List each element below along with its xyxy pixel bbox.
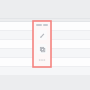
button[interactable]: [0, 67, 90, 75]
button[interactable]: Edit: [37, 30, 47, 40]
button[interactable]: Copy: [37, 44, 47, 54]
button[interactable]: More options: [38, 58, 46, 62]
button[interactable]: [0, 31, 90, 39]
button[interactable]: [0, 40, 90, 48]
button[interactable]: [0, 58, 90, 66]
button[interactable]: Selected action column: [33, 21, 51, 67]
button[interactable]: [0, 22, 90, 30]
button[interactable]: [0, 49, 90, 57]
